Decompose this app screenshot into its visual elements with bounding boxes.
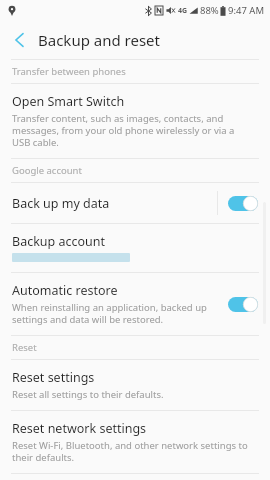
button[interactable]: Toggle — [228, 297, 258, 312]
staticText: Open Smart Switch — [12, 93, 125, 110]
staticText: Backup account — [12, 233, 106, 250]
button[interactable]: Open Smart Switch — [0, 84, 270, 158]
button[interactable]: Reset network settings — [0, 411, 270, 473]
staticText: Transfer content, such as images, contac… — [12, 112, 235, 149]
staticText: Reset all settings to their defaults. — [12, 388, 164, 401]
staticText: Automatic restore — [12, 282, 118, 299]
staticText: Google account — [12, 164, 82, 177]
staticText: Reset settings — [12, 369, 95, 386]
staticText: When reinstalling an application, backed… — [12, 301, 207, 326]
staticText: Transfer between phones — [12, 65, 126, 78]
staticText: Back up my data — [12, 195, 110, 212]
staticText: Reset network settings — [12, 420, 147, 437]
staticText: Reset Wi-Fi, Bluetooth, and other networ… — [12, 439, 248, 464]
staticText: Backup and reset — [38, 30, 160, 50]
button[interactable]: Back — [0, 21, 38, 59]
button[interactable]: Automatic restore — [0, 273, 270, 335]
staticText: 4G — [178, 6, 188, 15]
button[interactable]: Back up my data — [0, 183, 270, 223]
staticText: 88% — [200, 4, 219, 17]
button[interactable]: Backup account — [0, 224, 270, 272]
staticText: Reset — [12, 341, 37, 354]
button[interactable]: Toggle — [228, 196, 258, 211]
button[interactable]: Reset settings — [0, 360, 270, 410]
staticText: 9:47 AM — [228, 4, 265, 17]
